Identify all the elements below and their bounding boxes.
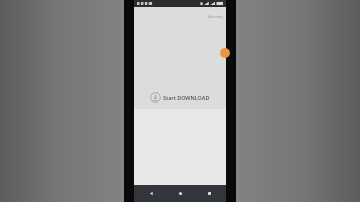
button[interactable]: Recent apps	[197, 185, 221, 202]
button[interactable]: Back	[139, 185, 163, 202]
staticText: Advertising	[208, 15, 223, 19]
button[interactable]: Download status	[220, 48, 230, 58]
button[interactable]: Home	[168, 185, 192, 202]
other: Download	[150, 92, 161, 103]
button[interactable]: Download	[134, 90, 226, 104]
staticText: Start DOWNLOAD	[163, 94, 210, 101]
